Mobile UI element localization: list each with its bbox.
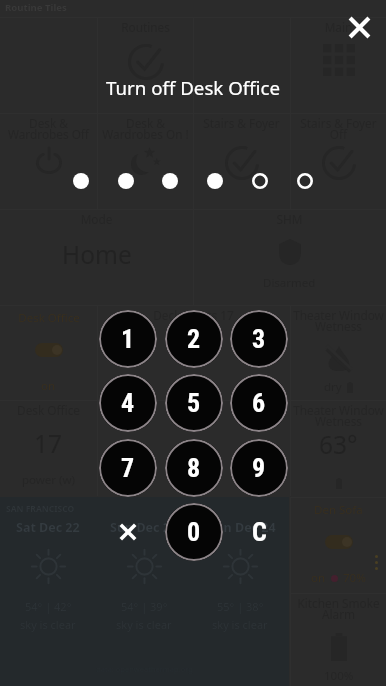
staticText: 9 (252, 453, 266, 483)
button[interactable]: 2 (165, 310, 223, 368)
staticText: 2 (187, 324, 201, 354)
staticText: Sun Dec 23 (110, 519, 178, 536)
button[interactable]: 5 (165, 374, 223, 432)
staticText: SAN FRANCISCO (6, 503, 75, 515)
staticText: Main (290, 19, 386, 35)
staticText: 0 (187, 517, 201, 547)
button[interactable]: Desk & Wardrobes Off (0, 113, 97, 209)
button[interactable]: Toggle (325, 535, 353, 549)
button[interactable]: 1 (99, 310, 157, 368)
staticText: Mon Dec 24 (204, 519, 276, 536)
staticText: on (311, 570, 326, 586)
staticText: Desk Office (18, 310, 80, 326)
button[interactable]: Routines (97, 17, 194, 113)
button[interactable]: 4 (99, 374, 157, 432)
staticText: Sat Dec 22 (16, 519, 80, 536)
button[interactable]: 6 (230, 374, 288, 432)
staticText: 1 (121, 324, 135, 354)
button[interactable] (97, 400, 290, 496)
button[interactable]: 9 (230, 439, 288, 497)
staticText: 70% (343, 570, 366, 586)
button[interactable]: C (230, 503, 288, 561)
button[interactable]: Stairs & Foyer (193, 113, 290, 209)
button[interactable]: Close (343, 11, 376, 44)
button[interactable]: 7 (99, 439, 157, 497)
staticText: Turn off Desk Office (0, 75, 386, 100)
staticText: 5 (187, 388, 201, 418)
button[interactable]: 8 (165, 439, 223, 497)
staticText: on (41, 378, 56, 394)
button[interactable]: Den Sofa (290, 497, 386, 593)
button[interactable]: Main (290, 17, 386, 113)
staticText: 4 (121, 388, 135, 418)
staticText: C (252, 517, 267, 547)
staticText: 8 (187, 453, 201, 483)
staticText: Den Sofa (314, 502, 363, 518)
button[interactable] (193, 17, 290, 113)
button[interactable]: Deck Lights 17 (97, 305, 290, 401)
staticText: 3 (252, 324, 266, 354)
button[interactable]: Stairs & Foyer Off (290, 113, 386, 209)
staticText: Routine Tiles (5, 1, 67, 14)
button[interactable]: Cancel (99, 503, 157, 561)
staticText: 6 (252, 388, 266, 418)
button[interactable]: 3 (230, 310, 288, 368)
staticText: 7 (121, 453, 135, 483)
button[interactable]: Toggle (35, 343, 63, 357)
button[interactable]: Desk & Wardrobes On ! (97, 113, 194, 209)
button[interactable]: 0 (165, 503, 223, 561)
staticText: Deck Lights 17 (97, 307, 290, 323)
